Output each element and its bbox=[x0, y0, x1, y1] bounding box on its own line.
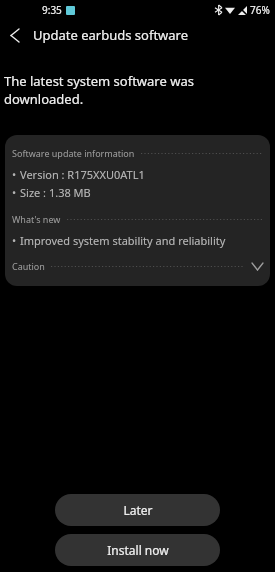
staticText: 76% bbox=[250, 3, 270, 17]
staticText: Size : 1.38 MB bbox=[20, 185, 91, 200]
staticText: • bbox=[12, 167, 17, 182]
staticText: The latest system software was downloade… bbox=[4, 72, 271, 108]
staticText: Caution bbox=[12, 260, 45, 272]
button[interactable]: Caution bbox=[12, 260, 263, 272]
staticText: Later bbox=[123, 502, 153, 518]
staticText: What's new bbox=[12, 213, 61, 225]
staticText: Version : R175XXU0ATL1 bbox=[20, 167, 145, 182]
button[interactable]: Install now bbox=[55, 534, 220, 566]
staticText: • bbox=[12, 233, 17, 248]
staticText: 9:35 bbox=[42, 3, 62, 17]
staticText: Improved system stability and reliabilit… bbox=[20, 233, 226, 248]
staticText: Install now bbox=[107, 542, 169, 558]
button[interactable]: Back bbox=[0, 20, 30, 50]
staticText: Software update information bbox=[12, 147, 135, 159]
button[interactable]: Later bbox=[55, 494, 220, 526]
staticText: Update earbuds software bbox=[33, 26, 189, 44]
staticText: • bbox=[12, 185, 17, 200]
